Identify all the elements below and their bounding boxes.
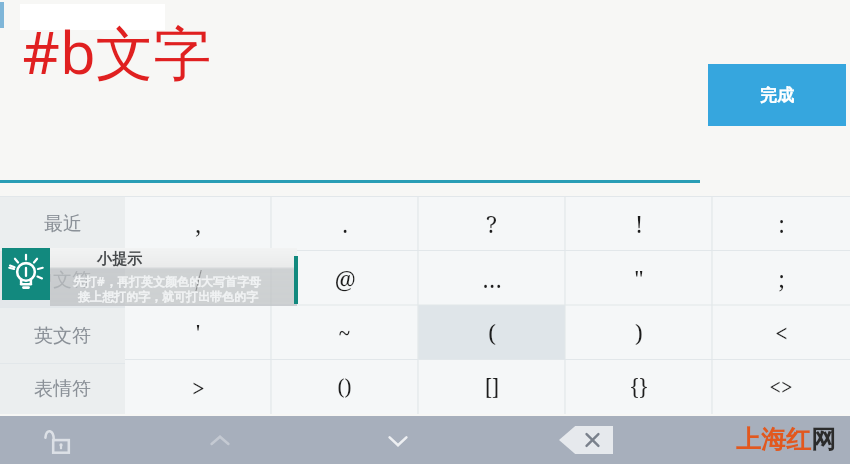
button[interactable]: 完成 (708, 64, 846, 126)
staticText: 上海红 (736, 424, 811, 455)
staticText: 网 (811, 424, 836, 455)
button[interactable]: [] (418, 360, 565, 415)
staticText: ; (778, 263, 785, 294)
button[interactable]: Previous (192, 422, 248, 460)
button[interactable]: {} (565, 360, 712, 415)
staticText: 先打#，再打英文颜色的大写首字母 (73, 273, 261, 289)
button[interactable]: ? (418, 196, 565, 251)
staticText: ( (488, 317, 496, 348)
staticText: <> (769, 373, 793, 402)
staticText: " (634, 263, 644, 294)
staticText: 小提示 (97, 250, 142, 269)
staticText: . (342, 208, 348, 239)
button[interactable]: 最近 (0, 196, 125, 251)
button[interactable]: , (125, 196, 271, 251)
staticText: #b文字 (22, 12, 212, 91)
staticText: [] (484, 373, 500, 402)
staticText: ' (195, 317, 201, 348)
staticText: 最近 (44, 212, 82, 236)
button[interactable]: ! (565, 196, 712, 251)
button[interactable]: : (712, 196, 850, 251)
staticText: , (195, 208, 201, 239)
button[interactable]: < (712, 305, 850, 360)
staticText: () (337, 373, 352, 402)
staticText: 接上想打的字，就可打出带色的字 (78, 289, 258, 304)
staticText: 表情符 (34, 377, 91, 401)
staticText: ) (635, 317, 643, 348)
button[interactable]: () (271, 360, 418, 415)
button[interactable]: 表情符 (0, 364, 125, 414)
staticText: ! (635, 208, 643, 239)
staticText: / (195, 263, 202, 294)
staticText: ? (486, 208, 497, 239)
button[interactable]: > (125, 360, 271, 415)
button[interactable]: @ (271, 251, 418, 306)
button[interactable]: ( (418, 305, 565, 360)
staticText: ~ (338, 317, 351, 348)
button[interactable]: " (565, 251, 712, 306)
button[interactable]: Next (370, 422, 426, 460)
button[interactable]: ' (125, 305, 271, 360)
staticText: {} (630, 373, 648, 402)
staticText: @ (334, 263, 356, 294)
staticText: > (192, 372, 205, 403)
button[interactable]: ; (712, 251, 850, 306)
button[interactable]: 英文符 (0, 308, 125, 363)
button[interactable]: Backspace (556, 424, 616, 456)
staticText: < (775, 317, 788, 348)
button[interactable]: 中文符 (0, 252, 125, 307)
button[interactable]: . (271, 196, 418, 251)
button[interactable]: … (418, 251, 565, 306)
button[interactable]: / (125, 251, 271, 306)
button[interactable]: <> (712, 360, 850, 415)
button[interactable]: ) (565, 305, 712, 360)
staticText: 中文符 (34, 268, 91, 292)
staticText: … (482, 263, 502, 294)
staticText: 英文符 (34, 324, 91, 348)
staticText: 完成 (760, 85, 794, 106)
staticText: : (778, 208, 785, 239)
button[interactable]: ~ (271, 305, 418, 360)
button[interactable]: Tip (2, 248, 50, 300)
button[interactable]: Unlock (30, 422, 86, 460)
